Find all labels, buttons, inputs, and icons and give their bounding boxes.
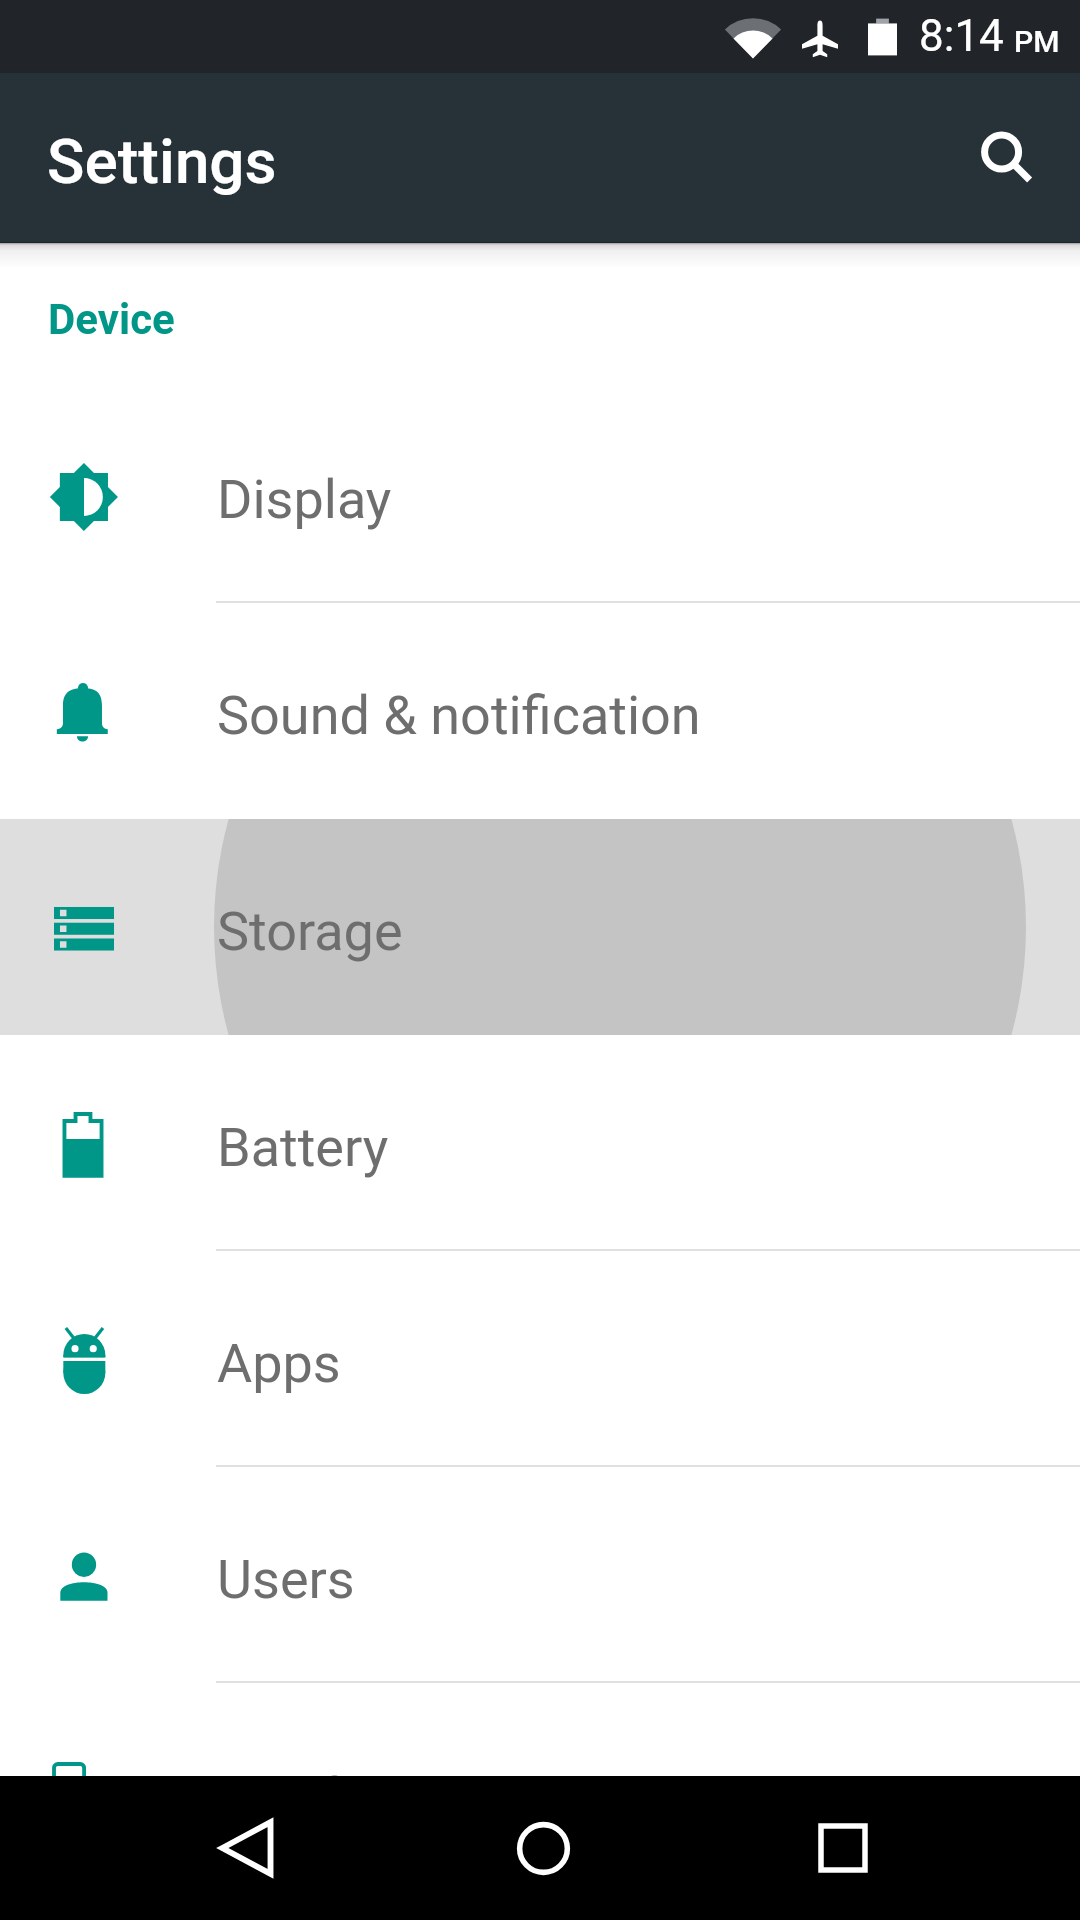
button[interactable]: Users xyxy=(0,1467,1080,1683)
button[interactable]: Back xyxy=(172,1776,322,1920)
button[interactable]: Search xyxy=(944,98,1064,218)
button[interactable]: Sound & notification xyxy=(0,603,1080,819)
staticText: Apps xyxy=(217,1332,341,1395)
staticText: Sound & notification xyxy=(217,684,701,747)
button[interactable]: Home xyxy=(468,1776,618,1920)
button[interactable]: Recents xyxy=(768,1776,918,1920)
button[interactable]: Storage xyxy=(0,819,1080,1035)
staticText: 8:14 xyxy=(919,10,1004,62)
staticText: Battery xyxy=(217,1116,389,1179)
button[interactable]: Apps xyxy=(0,1251,1080,1467)
button[interactable]: Battery xyxy=(0,1035,1080,1251)
staticText: PM xyxy=(1014,24,1060,59)
staticText: Display xyxy=(217,468,392,531)
staticText: Users xyxy=(217,1548,355,1611)
staticText: Settings xyxy=(47,125,277,198)
staticText: Storage xyxy=(217,900,403,963)
button[interactable]: Display xyxy=(0,387,1080,603)
staticText: Device xyxy=(48,295,175,344)
button[interactable]: Tap & pay xyxy=(0,1683,1080,1776)
